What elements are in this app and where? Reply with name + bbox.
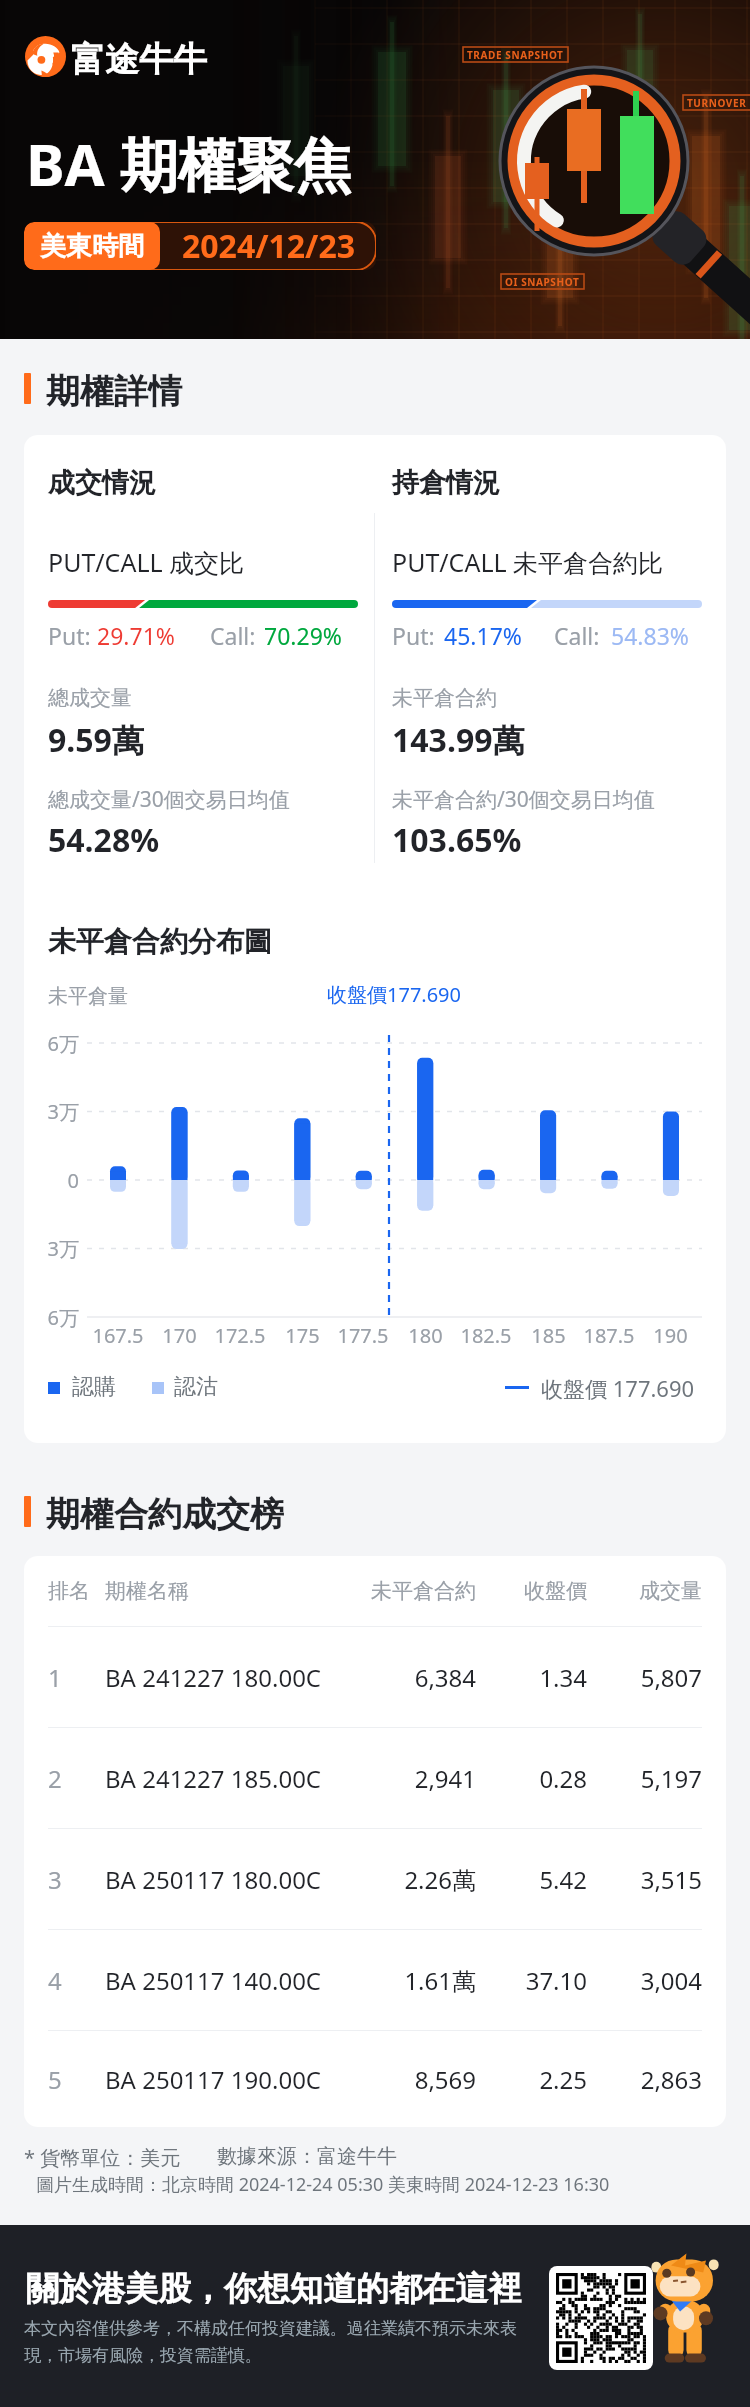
staticText: TURNOVER <box>687 96 747 110</box>
staticText: OI SNAPSHOT <box>505 275 580 289</box>
other: QR code <box>549 2266 653 2370</box>
staticText: 未平倉合約 <box>392 685 497 711</box>
staticText: 172.5 <box>214 1322 266 1349</box>
staticText: 期權詳情 <box>46 370 182 413</box>
staticText: 未平倉合約 <box>346 1578 476 1604</box>
staticText: 167.5 <box>92 1322 144 1349</box>
staticText: Call: <box>554 620 600 651</box>
staticText: 182.5 <box>460 1322 512 1349</box>
staticText: 認沽 <box>174 1373 218 1401</box>
staticText: 5 <box>48 2063 98 2096</box>
staticText: 190 <box>653 1322 688 1349</box>
staticText: TRADE SNAPSHOT <box>467 48 564 62</box>
other: Futu logo <box>25 36 66 77</box>
staticText: 總成交量 <box>48 685 132 711</box>
staticText: 103.65% <box>392 818 522 862</box>
staticText: 期權名稱 <box>105 1578 346 1604</box>
staticText: 圖片生成時間：北京時間 2024-12-24 05:30 美東時間 2024-1… <box>36 2172 610 2197</box>
staticText: 未平倉合約/30個交易日均值 <box>392 785 655 814</box>
staticText: 3万 <box>47 1098 79 1125</box>
staticText: 持倉情況 <box>392 466 500 500</box>
staticText: 成交情況 <box>48 466 156 500</box>
staticText: 總成交量/30個交易日均值 <box>48 785 290 814</box>
staticText: 177.5 <box>337 1322 389 1349</box>
staticText: 3,515 <box>587 1863 702 1896</box>
staticText: BA 241227 180.00C <box>105 1661 346 1694</box>
staticText: 期權合約成交榜 <box>46 1493 284 1536</box>
staticText: 富途牛牛 <box>71 38 207 81</box>
staticText: 收盤價 177.690 <box>541 1373 695 1403</box>
staticText: 未平倉量 <box>48 984 128 1009</box>
staticText: 70.29% <box>264 620 342 651</box>
staticText: 2.25 <box>476 2063 587 2096</box>
staticText: 數據來源：富途牛牛 <box>217 2144 397 2169</box>
staticText: 54.28% <box>48 818 160 862</box>
staticText: Put: <box>48 620 91 651</box>
staticText: 45.17% <box>444 620 522 651</box>
button[interactable]: 1 <box>24 1627 726 1727</box>
staticText: 收盤價 <box>476 1578 587 1604</box>
staticText: 本文內容僅供參考，不構成任何投資建議。過往業績不預示未來表 現，市場有風險，投資… <box>24 2318 517 2366</box>
staticText: 2.26萬 <box>346 1863 476 1896</box>
staticText: 0.28 <box>476 1762 587 1795</box>
staticText: Put: <box>392 620 435 651</box>
staticText: 37.10 <box>476 1964 587 1997</box>
staticText: BA 250117 140.00C <box>105 1964 346 1997</box>
staticText: BA 241227 185.00C <box>105 1762 346 1795</box>
staticText: 29.71% <box>97 620 175 651</box>
staticText: PUT/CALL 未平倉合約比 <box>392 545 664 579</box>
staticText: 187.5 <box>583 1322 635 1349</box>
staticText: PUT/CALL 成交比 <box>48 545 245 579</box>
staticText: 143.99萬 <box>392 718 525 762</box>
staticText: 6万 <box>47 1304 79 1331</box>
staticText: BA 期權聚焦 <box>26 124 352 203</box>
staticText: 2 <box>48 1762 98 1795</box>
staticText: 8,569 <box>346 2063 476 2096</box>
button[interactable]: 2 <box>24 1728 726 1828</box>
staticText: BA 250117 190.00C <box>105 2063 346 2096</box>
staticText: 1.34 <box>476 1661 587 1694</box>
staticText: 收盤價177.690 <box>327 981 461 1008</box>
staticText: 2,941 <box>346 1762 476 1795</box>
staticText: 5,197 <box>587 1762 702 1795</box>
staticText: 6,384 <box>346 1661 476 1694</box>
staticText: 54.83% <box>611 620 689 651</box>
staticText: 認購 <box>72 1373 116 1401</box>
staticText: 美東時間 <box>40 230 144 263</box>
button[interactable]: 3 <box>24 1829 726 1929</box>
staticText: 3,004 <box>587 1964 702 1997</box>
staticText: 成交量 <box>587 1578 702 1604</box>
button[interactable]: 4 <box>24 1930 726 2030</box>
staticText: 2,863 <box>587 2063 702 2096</box>
button[interactable]: 美東時間 <box>24 222 376 270</box>
staticText: 6万 <box>47 1030 79 1057</box>
staticText: 未平倉合約分布圖 <box>48 924 272 959</box>
staticText: 3 <box>48 1863 98 1896</box>
staticText: 關於港美股，你想知道的都在這裡 <box>26 2268 521 2310</box>
staticText: BA 250117 180.00C <box>105 1863 346 1896</box>
staticText: 0 <box>67 1167 79 1194</box>
staticText: 185 <box>531 1322 566 1349</box>
staticText: 1 <box>48 1661 98 1694</box>
staticText: 4 <box>48 1964 98 1997</box>
button[interactable]: 5 <box>24 2031 726 2127</box>
staticText: 5.42 <box>476 1863 587 1896</box>
staticText: Call: <box>210 620 256 651</box>
staticText: 排名 <box>48 1578 98 1604</box>
staticText: 175 <box>285 1322 320 1349</box>
staticText: 9.59萬 <box>48 718 144 762</box>
staticText: 180 <box>408 1322 443 1349</box>
staticText: 1.61萬 <box>346 1964 476 1997</box>
staticText: 170 <box>162 1322 197 1349</box>
staticText: 3万 <box>47 1235 79 1262</box>
staticText: 5,807 <box>587 1661 702 1694</box>
staticText: 2024/12/23 <box>182 224 355 268</box>
staticText: * 貨幣單位：美元 <box>24 2144 181 2171</box>
